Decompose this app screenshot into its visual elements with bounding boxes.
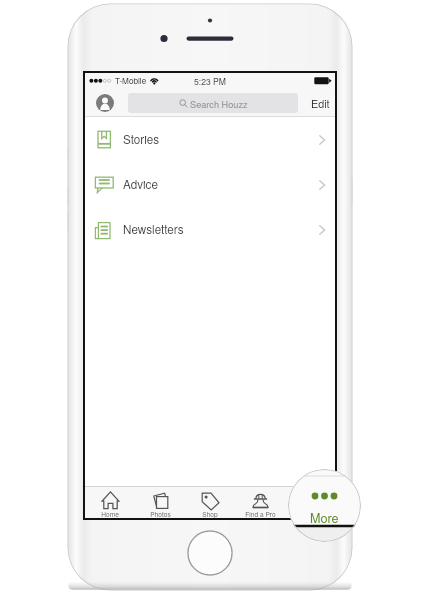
button[interactable]: More xyxy=(288,469,361,542)
staticText: Search Houzz xyxy=(190,97,248,110)
button[interactable]: Shop xyxy=(185,487,235,518)
staticText: More xyxy=(310,509,339,527)
staticText: Newsletters xyxy=(123,221,184,238)
staticText: 5:23 PM xyxy=(194,75,227,87)
staticText: Shop xyxy=(202,509,218,518)
button[interactable]: Home xyxy=(85,487,135,518)
staticText: More xyxy=(303,509,318,518)
staticText: T-Mobile xyxy=(115,75,147,87)
button[interactable]: Search Houzz xyxy=(128,93,298,113)
staticText: Find a Pro xyxy=(245,509,276,518)
button[interactable]: Edit xyxy=(305,89,335,116)
button[interactable]: More xyxy=(285,487,335,518)
staticText: Home xyxy=(101,509,119,518)
staticText: Edit xyxy=(311,96,330,111)
button[interactable]: Stories xyxy=(85,117,335,162)
button[interactable]: Find a Pro xyxy=(235,487,285,518)
button[interactable]: Photos xyxy=(135,487,185,518)
staticText: Stories xyxy=(123,131,160,148)
staticText: Photos xyxy=(150,509,171,518)
button[interactable]: Advice xyxy=(85,162,335,207)
button[interactable]: Newsletters xyxy=(85,207,335,252)
staticText: Advice xyxy=(123,176,158,193)
button[interactable]: Profile xyxy=(96,94,114,112)
